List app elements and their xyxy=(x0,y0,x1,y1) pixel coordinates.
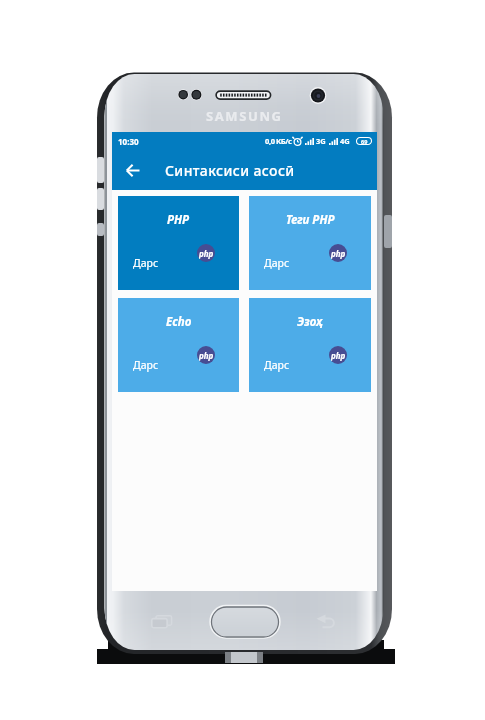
staticText: 10:30 xyxy=(118,136,139,147)
staticText: Теги PHP xyxy=(286,212,335,228)
staticText: Дарс xyxy=(264,358,290,372)
staticText: Синтаксиси асосӣ xyxy=(165,161,295,180)
staticText: php xyxy=(331,350,346,361)
staticText: SAMSUNG xyxy=(206,107,283,125)
staticText: 0,0 КБ/с xyxy=(265,136,292,146)
staticText: php xyxy=(199,248,214,259)
staticText: Эзоҳ xyxy=(297,314,323,330)
staticText: 4G xyxy=(340,136,350,146)
staticText: Echo xyxy=(166,314,192,330)
button[interactable]: Echo xyxy=(118,298,239,392)
staticText: php xyxy=(199,350,214,361)
staticText: 3G xyxy=(316,136,326,146)
button[interactable]: Теги PHP xyxy=(249,196,371,290)
staticText: PHP xyxy=(167,212,190,228)
button[interactable]: Эзоҳ xyxy=(249,298,371,392)
staticText: php xyxy=(331,248,346,259)
staticText: Дарс xyxy=(264,256,290,270)
staticText: Дарс xyxy=(133,358,159,372)
staticText: Дарс xyxy=(133,256,159,270)
button[interactable]: PHP xyxy=(118,196,239,290)
staticText: 69 xyxy=(361,138,368,145)
button[interactable]: Back xyxy=(120,157,146,183)
